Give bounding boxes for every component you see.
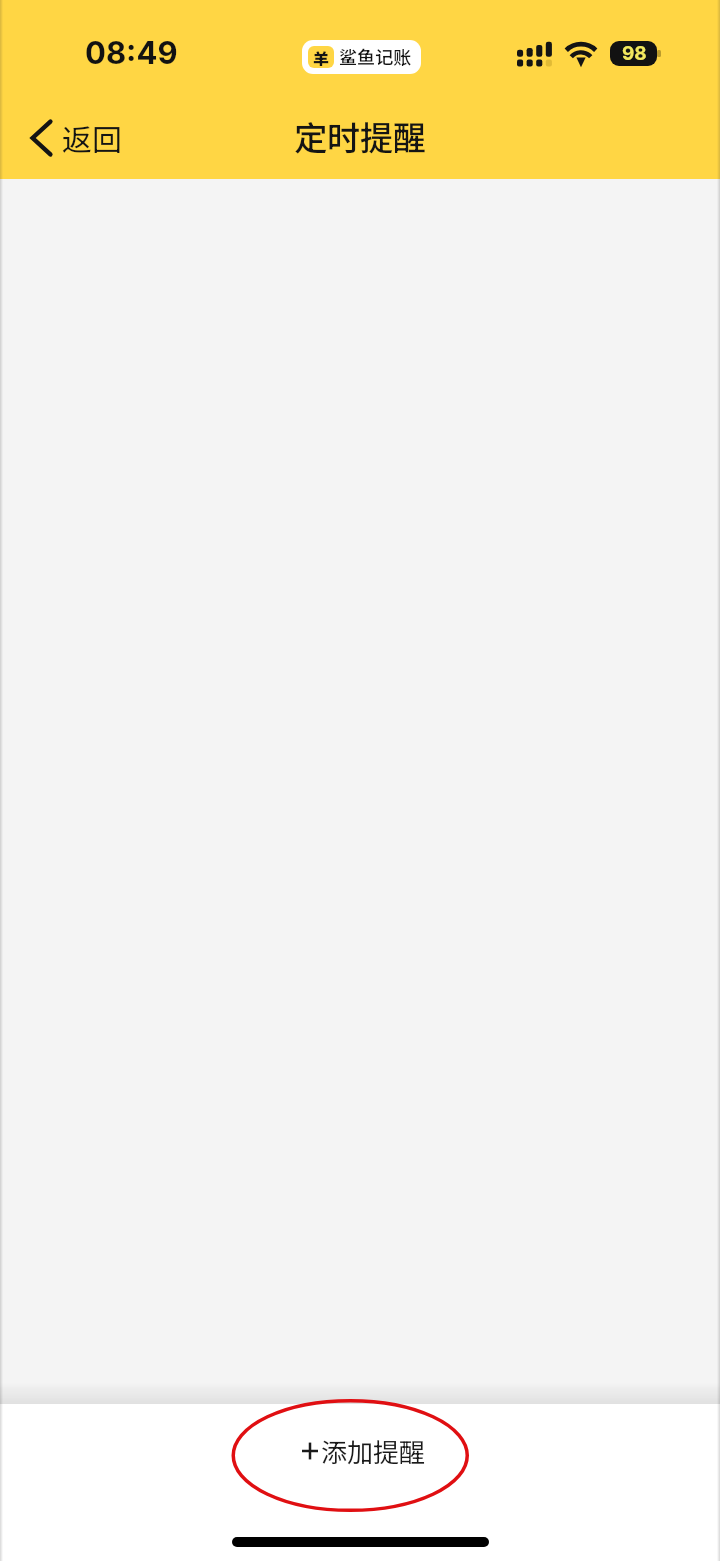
staticText: 添加提醒	[321, 1432, 426, 1470]
staticText: 鲨鱼记账	[339, 43, 411, 69]
staticText: 08:49	[85, 34, 178, 72]
other: Back	[30, 119, 53, 157]
staticText: 返回	[62, 116, 122, 159]
other: Cellular signal	[517, 41, 553, 68]
button[interactable]: 添加提醒	[0, 1404, 720, 1498]
button[interactable]: Back	[14, 106, 140, 169]
staticText: 羊	[313, 46, 330, 68]
staticText: 定时提醒	[294, 112, 426, 160]
staticText: 98	[622, 42, 647, 65]
other: Wi-Fi	[565, 42, 599, 69]
